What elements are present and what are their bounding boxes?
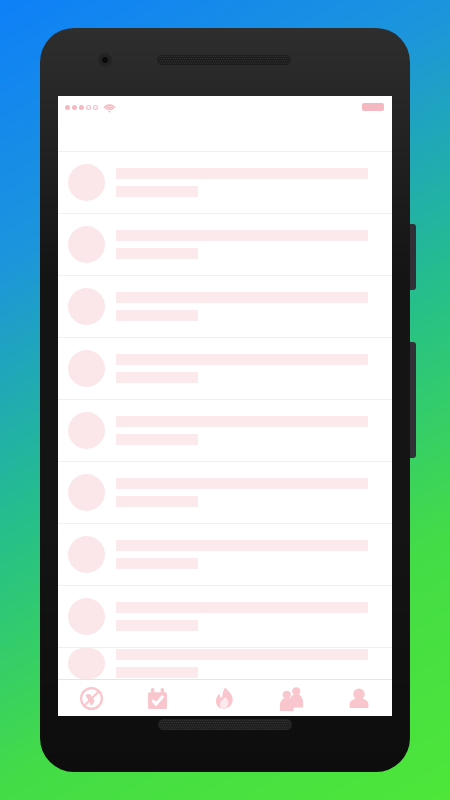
- button[interactable]: Events: [124, 680, 191, 716]
- button[interactable]: [58, 399, 392, 461]
- button[interactable]: [58, 585, 392, 647]
- button[interactable]: [58, 523, 392, 585]
- button[interactable]: Explore: [58, 680, 124, 716]
- button[interactable]: [58, 647, 392, 679]
- button[interactable]: [58, 151, 392, 213]
- button[interactable]: Profile: [325, 680, 392, 716]
- button[interactable]: [58, 337, 392, 399]
- button[interactable]: [58, 213, 392, 275]
- button[interactable]: [58, 275, 392, 337]
- button[interactable]: Trending: [191, 680, 258, 716]
- button[interactable]: [58, 461, 392, 523]
- button[interactable]: Groups: [258, 680, 325, 716]
